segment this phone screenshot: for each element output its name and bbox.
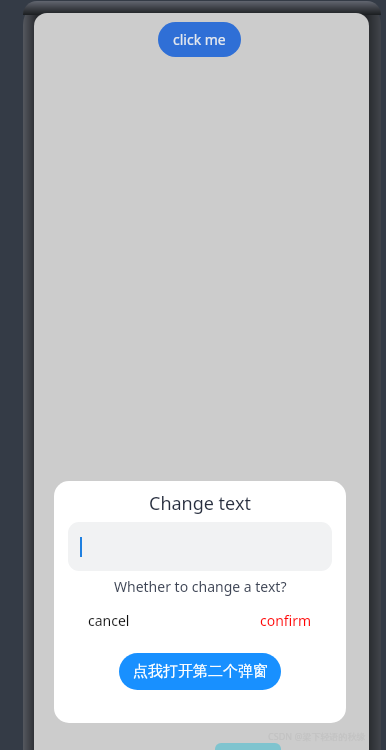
staticText: CSDN @梁下轻语的秋缘 <box>268 730 366 742</box>
staticText: Change text <box>149 491 251 516</box>
staticText: Whether to change a text? <box>114 577 287 596</box>
staticText: confirm <box>260 611 312 630</box>
button[interactable]: click me <box>158 22 241 57</box>
button[interactable]: confirm <box>260 611 312 630</box>
staticText: 点我打开第二个弹窗 <box>133 662 268 681</box>
other: Floating action <box>215 743 281 750</box>
button[interactable]: cancel <box>88 611 130 630</box>
staticText: click me <box>173 30 226 49</box>
button[interactable]: 点我打开第二个弹窗 <box>119 653 281 690</box>
button[interactable] <box>68 522 332 571</box>
staticText: cancel <box>88 611 130 630</box>
